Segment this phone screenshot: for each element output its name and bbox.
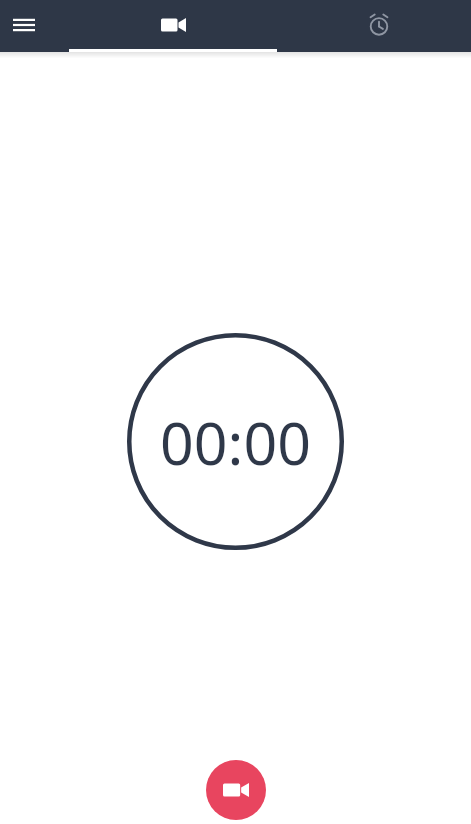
button[interactable]: Start recording (206, 760, 266, 820)
button[interactable]: Alarms (359, 5, 399, 45)
button[interactable]: Menu (4, 5, 44, 45)
button[interactable]: Record tab (153, 5, 193, 45)
staticText: 00:00 (160, 402, 311, 482)
button[interactable]: 00:00 (127, 333, 344, 550)
